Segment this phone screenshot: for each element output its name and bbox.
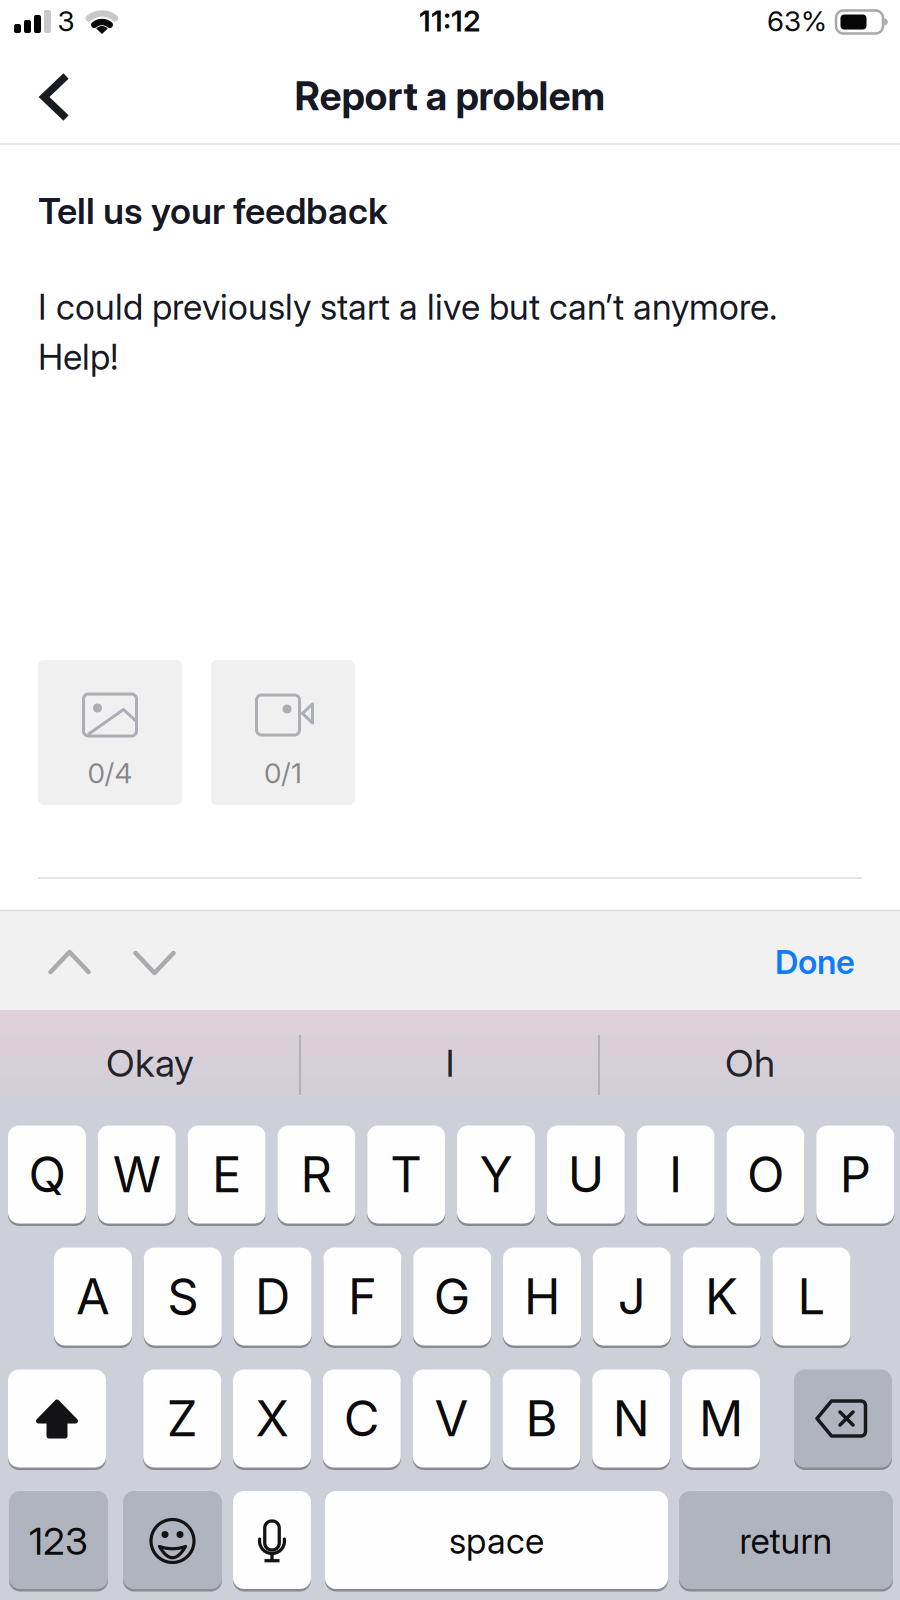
button[interactable]: I [637, 1125, 715, 1226]
button[interactable]: Next field [129, 947, 179, 979]
button[interactable]: Attach photo 0/4 [38, 660, 182, 805]
button[interactable]: Previous field [44, 946, 94, 978]
button[interactable]: Shift [8, 1369, 106, 1470]
button[interactable]: I [305, 1010, 595, 1116]
button[interactable]: T [367, 1125, 445, 1226]
staticText: X [255, 1383, 288, 1454]
staticText: V [435, 1383, 469, 1454]
staticText: U [568, 1139, 604, 1210]
staticText: L [797, 1261, 825, 1332]
button[interactable]: G [413, 1247, 491, 1348]
button[interactable]: return [679, 1491, 893, 1592]
staticText: Tell us your feedback [38, 185, 388, 237]
staticText: O [747, 1139, 784, 1210]
button[interactable]: Back [32, 68, 78, 126]
staticText: Help! [38, 332, 118, 382]
staticText: C [344, 1383, 380, 1454]
button[interactable]: S [144, 1247, 222, 1348]
button[interactable]: E [188, 1125, 266, 1226]
staticText: 63% [767, 1, 827, 41]
staticText: I [445, 1036, 454, 1090]
staticText: F [348, 1261, 377, 1332]
button[interactable]: K [683, 1247, 761, 1348]
button[interactable]: Emoji [123, 1491, 222, 1592]
staticText: B [525, 1383, 557, 1454]
button[interactable]: Y [457, 1125, 535, 1226]
staticText: Q [28, 1139, 65, 1210]
button[interactable]: P [816, 1125, 894, 1226]
staticText: A [76, 1261, 110, 1332]
staticText: W [113, 1139, 161, 1210]
staticText: 123 [29, 1514, 88, 1568]
staticText: 3 [57, 1, 74, 41]
staticText: P [840, 1139, 871, 1210]
staticText: 0/4 [87, 753, 132, 793]
staticText: Oh [725, 1036, 775, 1090]
button[interactable]: Z [143, 1369, 221, 1470]
staticText: H [524, 1261, 560, 1332]
button[interactable]: L [772, 1247, 850, 1348]
button[interactable]: M [682, 1369, 760, 1470]
button[interactable]: H [503, 1247, 581, 1348]
button[interactable]: Okay [5, 1010, 295, 1116]
button[interactable]: W [98, 1125, 176, 1226]
staticText: K [705, 1261, 738, 1332]
button[interactable]: Dictate [233, 1491, 311, 1592]
button[interactable]: Delete [794, 1369, 892, 1470]
staticText: R [300, 1139, 332, 1210]
staticText: 0/1 [264, 753, 302, 793]
button[interactable]: Done [755, 930, 875, 994]
button[interactable]: Attach video 0/1 [211, 660, 355, 805]
button[interactable]: J [593, 1247, 671, 1348]
button[interactable]: R [277, 1125, 355, 1226]
staticText: Report a problem [294, 68, 605, 124]
staticText: S [167, 1261, 198, 1332]
button[interactable]: Q [8, 1125, 86, 1226]
button[interactable]: V [413, 1369, 491, 1470]
staticText: G [434, 1261, 471, 1332]
staticText: J [618, 1261, 646, 1332]
staticText: D [255, 1261, 290, 1332]
button[interactable]: N [592, 1369, 670, 1470]
staticText: return [739, 1516, 832, 1566]
staticText: E [212, 1139, 241, 1210]
staticText: Done [775, 938, 855, 986]
staticText: Y [479, 1139, 512, 1210]
button[interactable]: X [233, 1369, 311, 1470]
button[interactable]: Oh [605, 1010, 895, 1116]
button[interactable]: space [325, 1491, 668, 1592]
staticText: I could previously start a live but can’… [38, 282, 777, 332]
staticText: N [613, 1383, 650, 1454]
button[interactable]: C [323, 1369, 401, 1470]
staticText: Okay [106, 1036, 194, 1090]
staticText: I [669, 1139, 682, 1210]
button[interactable]: U [547, 1125, 625, 1226]
staticText: M [699, 1383, 743, 1454]
staticText: T [390, 1139, 422, 1210]
button[interactable]: B [502, 1369, 580, 1470]
staticText: 11:12 [419, 0, 481, 42]
button[interactable]: 123 [9, 1491, 108, 1592]
staticText: Z [167, 1383, 198, 1454]
button[interactable]: D [234, 1247, 312, 1348]
staticText: space [449, 1516, 544, 1566]
button[interactable]: F [323, 1247, 401, 1348]
button[interactable]: A [54, 1247, 132, 1348]
button[interactable]: O [726, 1125, 804, 1226]
